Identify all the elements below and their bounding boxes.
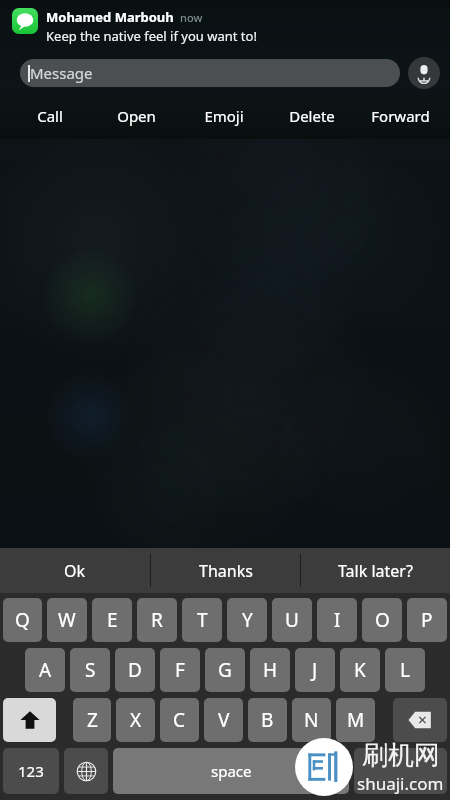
button[interactable]: K — [340, 648, 380, 692]
button[interactable]: P — [407, 598, 447, 642]
button[interactable]: Thanks — [151, 548, 300, 593]
staticText: now — [180, 10, 203, 25]
staticText: C — [173, 707, 186, 733]
button[interactable]: 123 — [3, 748, 59, 794]
button[interactable]: Shift — [3, 698, 56, 742]
button[interactable]: G — [205, 648, 245, 692]
staticText: T — [197, 607, 208, 633]
staticText: A — [39, 657, 52, 683]
button[interactable]: R — [137, 598, 177, 642]
button[interactable]: Emoji — [180, 101, 268, 131]
staticText: G — [218, 657, 232, 683]
staticText: Talk later? — [338, 560, 413, 582]
button[interactable]: O — [362, 598, 402, 642]
staticText: I — [334, 607, 341, 633]
button[interactable]: Forward — [356, 101, 444, 131]
staticText: 刷机网 — [362, 739, 440, 772]
button[interactable]: Delete — [268, 101, 356, 131]
button[interactable]: B — [248, 698, 287, 742]
button[interactable]: L — [385, 648, 425, 692]
staticText: 123 — [18, 761, 44, 781]
staticText: X — [130, 707, 142, 733]
staticText: D — [128, 657, 142, 683]
staticText: N — [304, 707, 319, 733]
button[interactable]: Call — [6, 101, 93, 131]
button[interactable]: Y — [227, 598, 267, 642]
button[interactable]: F — [160, 648, 200, 692]
button[interactable]: I — [317, 598, 357, 642]
button[interactable] — [354, 748, 447, 794]
button[interactable]: Ok — [0, 548, 150, 593]
staticText: U — [285, 607, 299, 633]
staticText: Open — [117, 106, 156, 126]
staticText: Mohamed Marbouh — [46, 8, 174, 26]
staticText: Keep the native feel if you want to! — [46, 27, 257, 45]
button[interactable]: J — [295, 648, 335, 692]
staticText: Thanks — [199, 560, 253, 582]
staticText: W — [58, 607, 76, 633]
staticText: S — [85, 657, 96, 683]
staticText: K — [354, 657, 366, 683]
button[interactable]: Message — [20, 59, 400, 87]
button[interactable]: A — [25, 648, 65, 692]
staticText: Forward — [371, 106, 430, 126]
button[interactable]: Open — [93, 101, 180, 131]
staticText: M — [347, 707, 365, 733]
staticText: Emoji — [204, 106, 244, 126]
button[interactable]: T — [182, 598, 222, 642]
staticText: Call — [37, 106, 63, 126]
staticText: O — [375, 607, 390, 633]
button[interactable]: V — [204, 698, 243, 742]
staticText: V — [218, 707, 230, 733]
staticText: H — [263, 657, 278, 683]
button[interactable]: Talk later? — [301, 548, 450, 593]
staticText: Ok — [64, 560, 86, 582]
button[interactable]: Backspace — [393, 698, 447, 742]
staticText: shuaji.com — [357, 772, 444, 795]
staticText: L — [400, 657, 410, 683]
staticText: P — [421, 607, 433, 633]
staticText: space — [211, 761, 252, 781]
button[interactable]: space — [113, 748, 349, 794]
button[interactable]: Dictate message — [408, 57, 440, 89]
staticText: Z — [87, 707, 98, 733]
button[interactable]: D — [115, 648, 155, 692]
button[interactable]: M — [336, 698, 375, 742]
staticText: J — [312, 657, 318, 683]
staticText: B — [261, 707, 274, 733]
button[interactable]: X — [116, 698, 155, 742]
button[interactable]: U — [272, 598, 312, 642]
staticText: Delete — [289, 106, 335, 126]
staticText: R — [151, 607, 163, 633]
button[interactable]: W — [47, 598, 87, 642]
button[interactable]: Z — [73, 698, 111, 742]
button[interactable]: S — [70, 648, 110, 692]
staticText: Message — [30, 63, 93, 83]
button[interactable]: C — [160, 698, 199, 742]
button[interactable]: N — [292, 698, 331, 742]
staticText: F — [175, 657, 185, 683]
button[interactable]: H — [250, 648, 290, 692]
staticText: Q — [15, 607, 30, 633]
button[interactable]: Change keyboard language — [64, 748, 108, 794]
button[interactable]: E — [92, 598, 132, 642]
staticText: Y — [242, 607, 253, 633]
button[interactable]: Q — [3, 598, 42, 642]
staticText: E — [107, 607, 118, 633]
